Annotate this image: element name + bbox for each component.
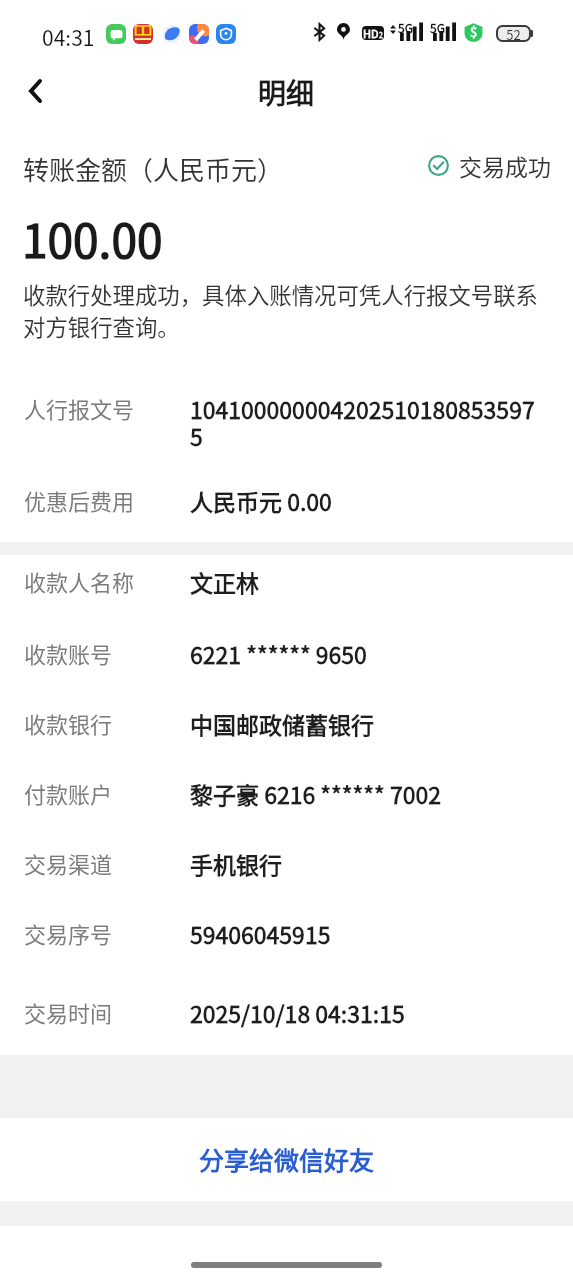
button[interactable]: 收款人名称: [0, 565, 573, 637]
staticText: 交易时间: [24, 996, 113, 1028]
staticText: 优惠后费用: [24, 484, 135, 516]
button[interactable]: 收款银行: [0, 707, 573, 777]
staticText: 中国邮政储蓄银行: [190, 707, 553, 740]
staticText: 104100000004202510180853597 5: [190, 392, 553, 453]
button[interactable]: 人行报文号: [0, 392, 573, 464]
staticText: 交易渠道: [24, 847, 113, 879]
button[interactable]: 交易渠道: [0, 847, 573, 917]
staticText: $: [470, 22, 478, 41]
staticText: 2025/10/18 04:31:15: [190, 996, 553, 1029]
staticText: 收款银行: [24, 707, 113, 739]
staticText: 52: [506, 25, 521, 42]
staticText: 付款账户: [24, 777, 113, 809]
staticText: 5G: [398, 19, 413, 36]
staticText: 100.00: [22, 205, 163, 272]
staticText: 文正林: [190, 565, 553, 598]
staticText: 收款人名称: [24, 565, 135, 597]
button[interactable]: Back: [9, 65, 61, 117]
staticText: 黎子豪 6216 ****** 7002: [190, 777, 553, 810]
button[interactable]: 优惠后费用: [0, 484, 573, 534]
staticText: 交易序号: [24, 917, 113, 949]
staticText: 转账金额（人民币元）: [23, 150, 284, 188]
button[interactable]: 收款账号: [0, 637, 573, 707]
staticText: 59406045915: [190, 917, 553, 950]
staticText: HD: [363, 26, 379, 39]
staticText: 人行报文号: [24, 392, 135, 424]
button[interactable]: 付款账户: [0, 777, 573, 847]
staticText: 手机银行: [190, 847, 553, 880]
staticText: 人民币元 0.00: [190, 484, 553, 517]
button[interactable]: 交易时间: [0, 996, 573, 1046]
staticText: 5G: [430, 19, 445, 36]
staticText: 04:31: [42, 22, 95, 52]
button[interactable]: 交易成功: [428, 149, 551, 182]
staticText: 收款账号: [24, 637, 113, 669]
button[interactable]: 分享给微信好友: [0, 1118, 573, 1200]
staticText: 6221 ****** 9650: [190, 637, 553, 670]
staticText: 分享给微信好友: [199, 1141, 375, 1177]
staticText: 2: [379, 30, 383, 40]
staticText: 收款行处理成功，具体入账情况可凭人行报文号联系对方银行查询。: [23, 278, 549, 342]
staticText: 交易成功: [459, 149, 551, 182]
staticText: 明细: [258, 72, 315, 113]
button[interactable]: 交易序号: [0, 917, 573, 991]
